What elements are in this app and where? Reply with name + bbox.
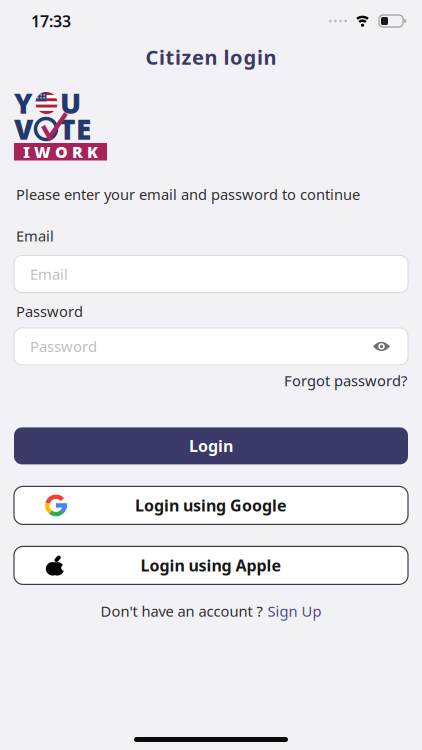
staticText: TE: [59, 110, 91, 148]
button[interactable]: Forgot password?: [284, 371, 407, 390]
staticText: 17:33: [31, 10, 71, 32]
button[interactable]: Login: [14, 427, 408, 464]
staticText: I W O R K: [23, 141, 98, 162]
staticText: Sign Up: [267, 601, 321, 621]
staticText: Login using Google: [135, 495, 287, 516]
staticText: Citizen login: [145, 44, 276, 70]
staticText: Email: [30, 264, 68, 284]
staticText: Email: [16, 226, 54, 245]
staticText: Please enter your email and password to …: [16, 184, 360, 204]
staticText: Password: [16, 301, 83, 321]
button[interactable]: Sign Up: [267, 601, 321, 621]
staticText: Forgot password?: [284, 371, 407, 390]
staticText: Don't have an account ?: [100, 601, 262, 621]
staticText: V: [14, 110, 33, 148]
button[interactable]: [373, 341, 390, 352]
staticText: Login using Apple: [140, 555, 281, 576]
staticText: Y: [14, 84, 33, 122]
button[interactable]: Login using Apple: [14, 546, 408, 584]
staticText: Password: [30, 337, 97, 356]
button[interactable]: Login using Google: [14, 486, 408, 524]
staticText: U: [60, 84, 81, 122]
staticText: Login: [189, 435, 233, 456]
